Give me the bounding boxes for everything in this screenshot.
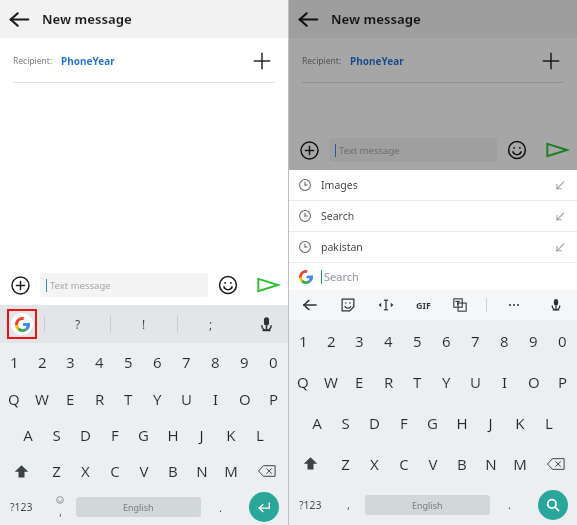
button[interactable]: 9 [519,320,548,361]
button[interactable]: X [360,443,389,484]
button[interactable]: S [331,402,360,443]
button[interactable]: 7 [461,320,490,361]
button[interactable]: P [548,361,577,402]
button[interactable]: Comma [332,484,365,525]
button[interactable]: 8 [201,343,230,380]
button[interactable]: Search [538,490,568,520]
button[interactable]: Search [289,263,577,290]
button[interactable]: H [158,417,187,453]
button[interactable]: A [302,402,331,443]
button[interactable]: R [85,380,114,417]
button[interactable]: Add recipient [246,45,278,77]
button[interactable]: F [100,417,129,453]
button[interactable]: Images [289,170,577,200]
button[interactable]: C [389,443,418,484]
button[interactable]: X [71,453,100,489]
button[interactable]: PhoneYear [350,54,404,68]
button[interactable]: 9 [230,343,259,380]
button[interactable]: A [13,417,42,453]
button[interactable]: R [374,361,403,402]
button[interactable]: Q [0,380,28,417]
button[interactable]: V [418,443,447,484]
button[interactable]: Q [289,361,317,402]
button[interactable]: K [216,417,245,453]
button[interactable]: H [447,402,476,443]
button[interactable]: Back [289,0,327,38]
button[interactable]: Period [490,484,528,525]
button[interactable]: C [100,453,129,489]
button[interactable]: 6 [143,343,172,380]
button[interactable]: J [187,417,216,453]
button[interactable]: U [461,361,490,402]
button[interactable]: 3 [345,320,374,361]
button[interactable]: Add recipient [535,45,567,77]
button[interactable]: Back [0,0,38,38]
button[interactable]: D [71,417,100,453]
button[interactable]: G [418,402,447,443]
button[interactable]: Insert Images [547,172,573,198]
button[interactable]: More options [499,290,529,320]
button[interactable]: 3 [56,343,85,380]
button[interactable]: Z [331,443,360,484]
button[interactable]: Backspace [534,443,577,484]
button[interactable]: V [129,453,158,489]
button[interactable]: E [345,361,374,402]
button[interactable]: 4 [85,343,114,380]
button[interactable]: Text editing [371,290,401,320]
button[interactable]: 0 [259,343,288,380]
button[interactable]: Emoji [497,130,537,170]
button[interactable]: Period [201,489,239,525]
button[interactable]: 4 [374,320,403,361]
button[interactable]: Text message [40,273,208,297]
button[interactable]: M [505,443,534,484]
button[interactable]: Enter [249,492,279,522]
button[interactable]: English [365,495,490,515]
button[interactable]: GIF [407,290,439,320]
button[interactable]: B [447,443,476,484]
button[interactable]: 6 [432,320,461,361]
button[interactable]: ?123 [289,484,332,525]
button[interactable]: Emoji [208,265,248,305]
button[interactable]: PhoneYear [61,54,115,68]
button[interactable]: W [28,380,56,417]
button[interactable]: 2 [28,343,56,380]
button[interactable]: J [476,402,505,443]
button[interactable]: D [360,402,389,443]
button[interactable]: T [114,380,143,417]
button[interactable]: Shift [0,453,42,489]
button[interactable]: P [259,380,288,417]
button[interactable]: 5 [403,320,432,361]
button[interactable]: Attach [289,130,329,170]
button[interactable]: Send [248,265,288,305]
button[interactable]: Voice input [541,290,571,320]
button[interactable]: Backspace [245,453,288,489]
button[interactable]: I [201,380,230,417]
button[interactable]: 2 [317,320,345,361]
button[interactable]: 1 [289,320,317,361]
button[interactable]: Stickers [333,290,363,320]
button[interactable]: Y [432,361,461,402]
button[interactable]: N [187,453,216,489]
button[interactable]: Google search [7,309,37,339]
button[interactable]: Insert Search [547,203,573,229]
button[interactable]: Comma [43,489,76,525]
button[interactable]: pakistan [289,232,577,262]
button[interactable]: 0 [548,320,577,361]
button[interactable]: 8 [490,320,519,361]
button[interactable]: Translate [445,290,475,320]
button[interactable]: E [56,380,85,417]
button[interactable]: Attach [0,265,40,305]
button[interactable]: T [403,361,432,402]
button[interactable]: G [129,417,158,453]
button[interactable]: L [534,402,563,443]
button[interactable]: B [158,453,187,489]
button[interactable]: L [245,417,274,453]
button[interactable]: M [216,453,245,489]
button[interactable]: O [230,380,259,417]
button[interactable]: W [317,361,345,402]
button[interactable]: Send [537,130,577,170]
button[interactable]: Z [42,453,71,489]
button[interactable]: Question mark [45,305,110,343]
button[interactable]: Text message [329,138,497,162]
button[interactable]: U [172,380,201,417]
